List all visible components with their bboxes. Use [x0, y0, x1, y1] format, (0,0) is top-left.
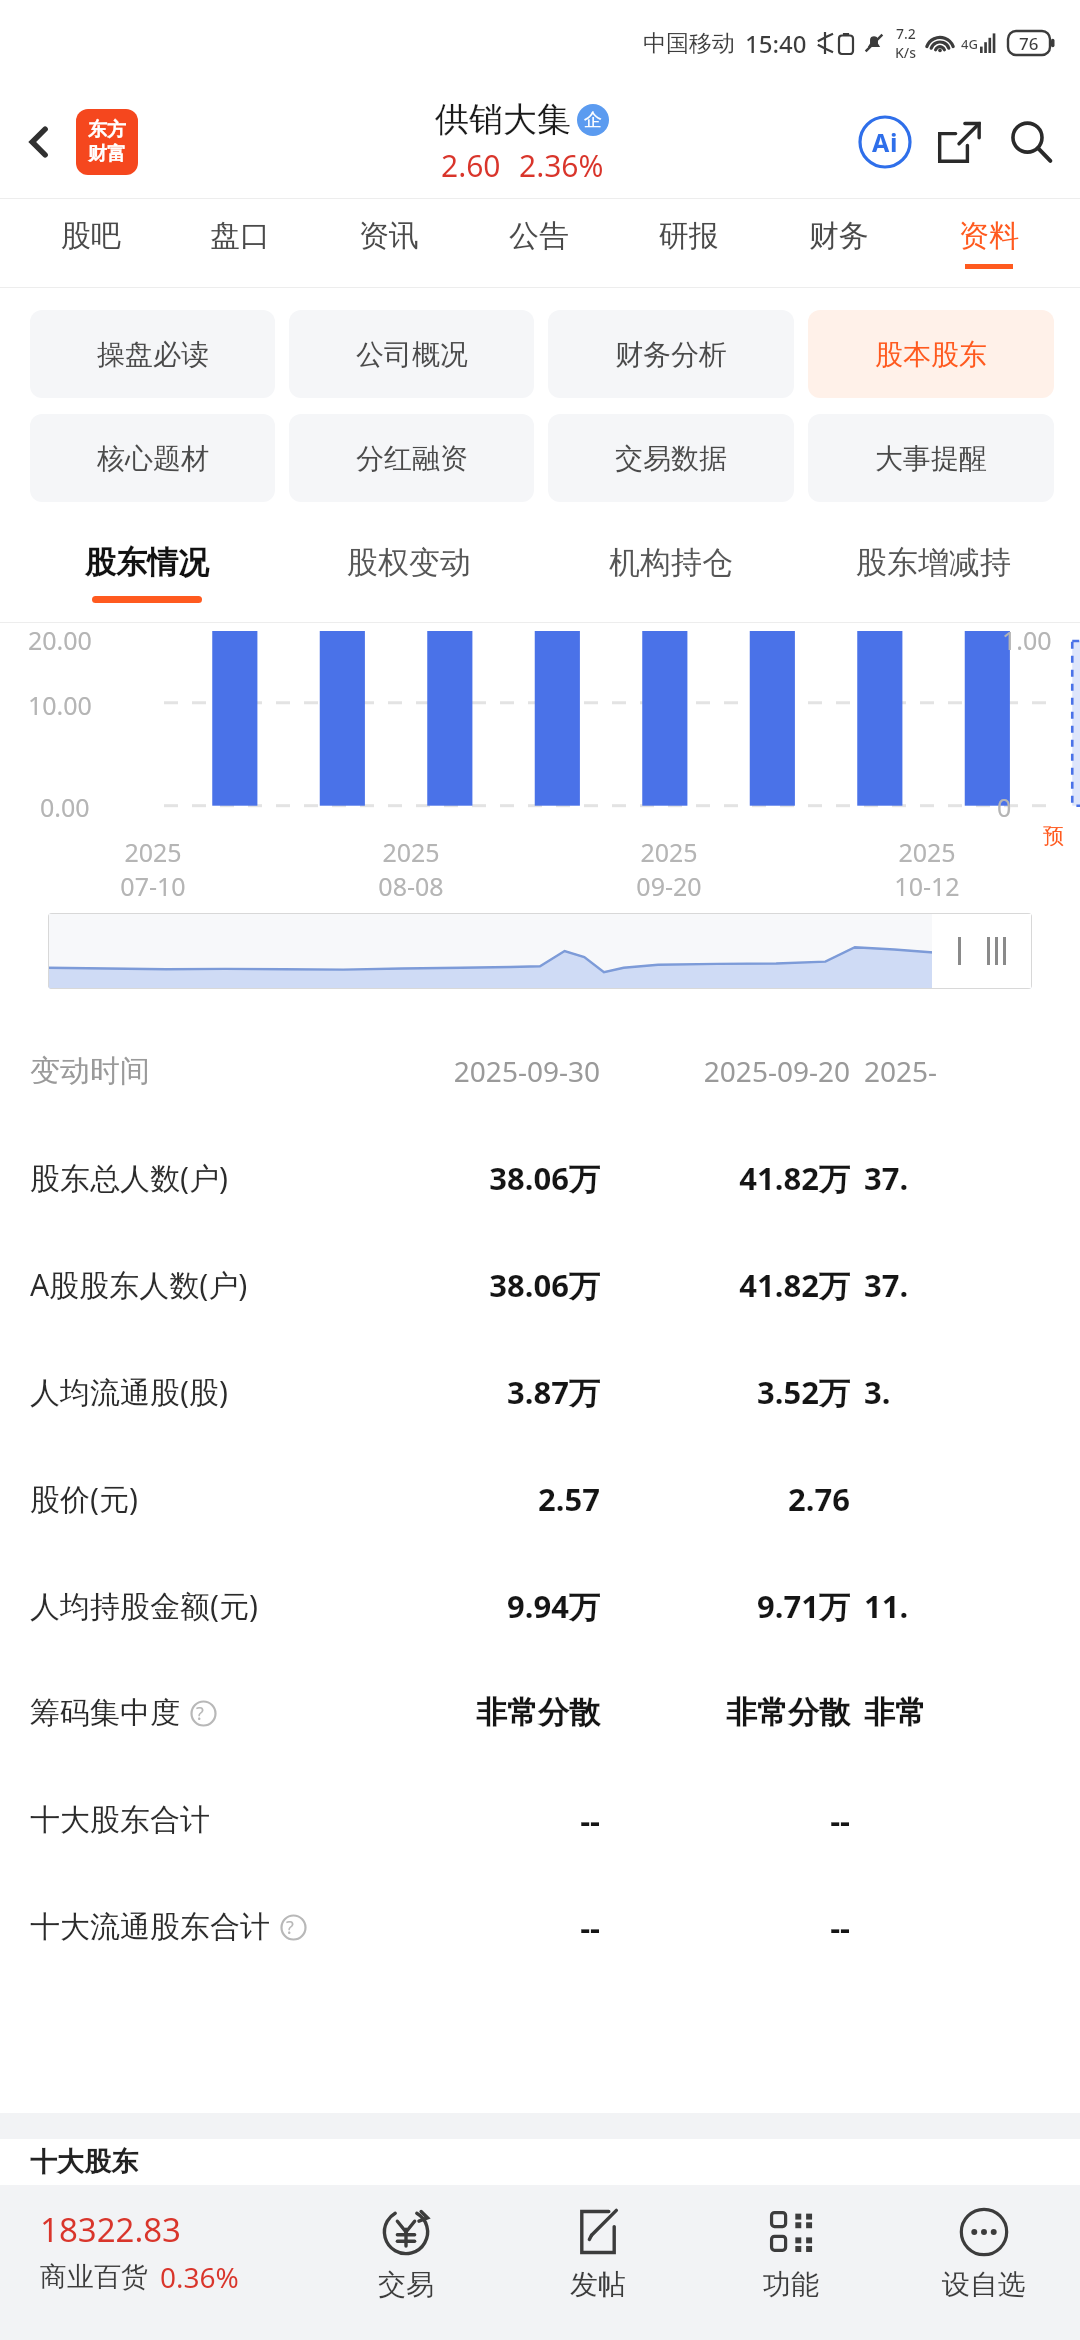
button[interactable]: 资讯: [314, 199, 464, 287]
staticText: 2025 10-12: [894, 835, 960, 903]
button[interactable]: 操盘必读: [30, 310, 275, 398]
staticText: --: [830, 1906, 850, 1948]
button[interactable]: 筹码集中度: [30, 1659, 1080, 1766]
button[interactable]: 财务分析: [548, 310, 794, 398]
button[interactable]: 财务: [764, 199, 914, 287]
button[interactable]: 机构持仓: [540, 512, 802, 622]
staticText: 研报: [659, 217, 719, 255]
button[interactable]: 股价(元): [30, 1445, 1080, 1552]
staticText: 股东增减持: [856, 543, 1011, 582]
button[interactable]: AI assistant: [854, 111, 916, 173]
button[interactable]: 股权变动: [278, 512, 540, 622]
staticText: --: [580, 1906, 600, 1948]
staticText: --: [830, 1799, 850, 1841]
staticText: 分红融资: [356, 441, 468, 476]
staticText: 股权变动: [347, 543, 471, 582]
button[interactable]: Range selector: [48, 913, 1032, 989]
button[interactable]: 股东情况: [16, 512, 278, 622]
staticText: 股吧: [61, 217, 121, 255]
button[interactable]: 人均持股金额(元): [30, 1552, 1080, 1659]
staticText: 盘口: [210, 217, 270, 255]
staticText: 机构持仓: [609, 543, 733, 582]
staticText: 0: [997, 790, 1012, 824]
staticText: 20.00: [28, 623, 92, 657]
staticText: 4G: [961, 35, 978, 53]
staticText: 2025-09-30: [453, 1052, 600, 1090]
button[interactable]: 十大股东合计: [30, 1766, 1080, 1873]
button[interactable]: 十大流通股东合计: [30, 1873, 1080, 1980]
button[interactable]: East Money: [76, 109, 138, 175]
button[interactable]: 交易: [310, 2191, 502, 2340]
button[interactable]: 18322.83: [0, 2191, 310, 2340]
button[interactable]: A股股东人数(户): [30, 1231, 1080, 1338]
button[interactable]: Search: [1000, 111, 1062, 173]
staticText: 41.82万: [739, 1157, 850, 1199]
button[interactable]: 设自选: [887, 2191, 1080, 2340]
button[interactable]: 资料: [914, 199, 1064, 287]
staticText: 0.36%: [160, 2258, 239, 2296]
staticText: 操盘必读: [97, 337, 209, 372]
staticText: 2025-09-20: [703, 1052, 850, 1090]
staticText: 3.: [864, 1371, 891, 1413]
staticText: K/s: [895, 43, 917, 62]
staticText: 人均持股金额(元): [30, 1585, 258, 1626]
staticText: ?: [196, 1701, 204, 1726]
staticText: 交易数据: [615, 441, 727, 476]
staticText: 37.: [864, 1264, 909, 1306]
staticText: 筹码集中度: [30, 1694, 180, 1732]
staticText: 2025 07-10: [120, 835, 186, 903]
button[interactable]: 股东总人数(户): [30, 1124, 1080, 1231]
button[interactable]: 发帖: [502, 2191, 694, 2340]
staticText: 大事提醒: [875, 441, 987, 476]
staticText: 人均流通股(股): [30, 1371, 228, 1412]
staticText: i: [890, 125, 898, 159]
staticText: 核心题材: [97, 441, 209, 476]
staticText: 资讯: [359, 217, 419, 255]
staticText: --: [580, 1799, 600, 1841]
button[interactable]: 核心题材: [30, 414, 275, 502]
staticText: 十大股东: [30, 2145, 138, 2179]
staticText: 2.60: [441, 145, 501, 186]
button[interactable]: 公告: [464, 199, 614, 287]
staticText: 37.: [864, 1157, 909, 1199]
button[interactable]: Back: [8, 111, 70, 173]
button[interactable]: 人均流通股(股): [30, 1338, 1080, 1445]
staticText: 7.2: [896, 24, 916, 43]
staticText: 3.52万: [757, 1371, 850, 1413]
button[interactable]: 交易数据: [548, 414, 794, 502]
staticText: 东方: [88, 118, 126, 142]
staticText: 商业百货: [40, 2260, 148, 2294]
button[interactable]: 股吧: [16, 199, 165, 287]
staticText: 3.87万: [507, 1371, 600, 1413]
staticText: 9.94万: [507, 1585, 600, 1627]
staticText: ?: [286, 1915, 294, 1940]
staticText: 2025-: [864, 1052, 938, 1090]
staticText: 企: [584, 109, 602, 132]
button[interactable]: 变动时间: [30, 1017, 1080, 1124]
staticText: A股股东人数(户): [30, 1264, 248, 1305]
button[interactable]: 大事提醒: [808, 414, 1054, 502]
staticText: 财富: [88, 142, 126, 166]
staticText: 财务分析: [615, 337, 727, 372]
staticText: 2.76: [788, 1478, 850, 1520]
staticText: 1.00: [1002, 623, 1052, 657]
staticText: 非常: [864, 1693, 926, 1732]
button[interactable]: Share: [928, 111, 990, 173]
staticText: 76: [1019, 32, 1039, 55]
staticText: 股本股东: [875, 337, 987, 372]
staticText: 18322.83: [40, 2207, 181, 2252]
staticText: 2.57: [538, 1478, 600, 1520]
button[interactable]: 盘口: [165, 199, 314, 287]
button[interactable]: 公司概况: [289, 310, 534, 398]
staticText: 股东总人数(户): [30, 1157, 228, 1198]
button[interactable]: 研报: [614, 199, 764, 287]
staticText: 公司概况: [356, 337, 468, 372]
button[interactable]: 功能: [694, 2191, 887, 2340]
staticText: 41.82万: [739, 1264, 850, 1306]
button[interactable]: 股东增减持: [802, 512, 1064, 622]
button[interactable]: 股本股东: [808, 310, 1054, 398]
staticText: 0.00: [40, 790, 90, 824]
button[interactable]: 分红融资: [289, 414, 534, 502]
staticText: 十大股东合计: [30, 1801, 210, 1839]
staticText: 38.06万: [489, 1264, 600, 1306]
